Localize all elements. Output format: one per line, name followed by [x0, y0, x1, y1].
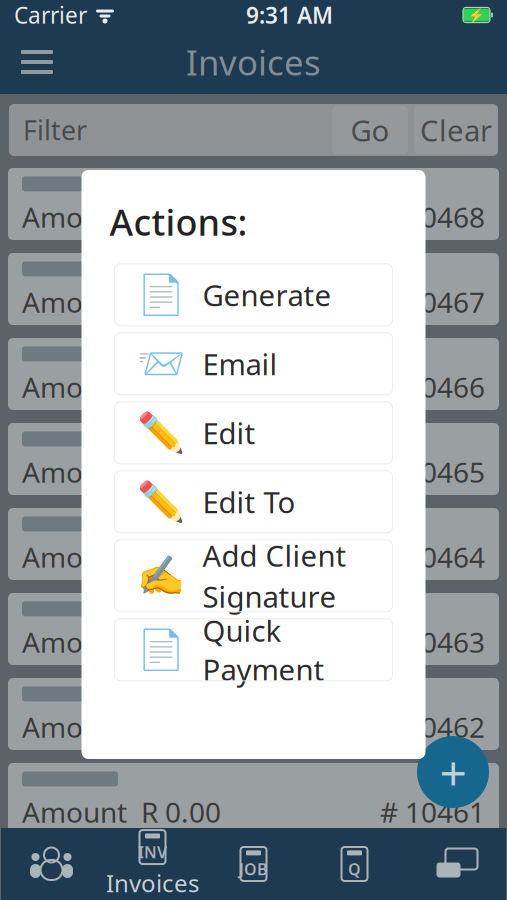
staticText: # 10467	[380, 283, 485, 321]
staticText: Q	[348, 858, 361, 880]
staticText: Amount R 0.00	[22, 623, 221, 661]
staticText: # 10462	[380, 708, 485, 746]
staticText: ⚡	[468, 7, 485, 23]
staticText: INV	[138, 841, 167, 863]
staticText: Carrier	[14, 0, 87, 30]
staticText: ✏️	[136, 480, 184, 524]
staticText: Amount R 0.00	[22, 708, 221, 746]
button[interactable]: Jobs	[203, 828, 304, 900]
button[interactable]: Payments	[405, 828, 506, 900]
button[interactable]: 📄	[114, 264, 392, 326]
staticText: JOB	[239, 858, 268, 880]
staticText: Amount R 0.00	[22, 368, 221, 406]
staticText: Add Client	[202, 536, 346, 575]
staticText: Amount R 0.00	[22, 453, 221, 491]
staticText: Go	[350, 110, 389, 149]
staticText: # 10464	[380, 538, 485, 576]
staticText: Invoices	[186, 39, 321, 85]
staticText: Filter	[23, 112, 87, 148]
button[interactable]: Add invoice	[417, 736, 489, 808]
staticText: # 10465	[380, 453, 485, 491]
staticText: Clear	[420, 110, 492, 149]
button[interactable]: 📨	[114, 333, 392, 395]
staticText: 📨	[136, 342, 184, 386]
staticText: Amount R 0.00	[22, 283, 221, 321]
button[interactable]: 📄	[114, 619, 392, 681]
staticText: ✍️	[136, 554, 184, 598]
staticText: # 10466	[380, 368, 485, 406]
button[interactable]: Quotes	[304, 828, 405, 900]
button[interactable]: Clear	[414, 106, 498, 154]
staticText: # 10468	[380, 198, 485, 236]
button[interactable]: ✏️	[114, 402, 392, 464]
button[interactable]: Menu	[10, 40, 64, 84]
staticText: Amount R 0.00	[22, 538, 221, 576]
staticText: Edit	[202, 413, 255, 452]
staticText: Signature	[202, 577, 336, 616]
button[interactable]: ✍️	[114, 540, 392, 612]
staticText: ✏️	[136, 411, 184, 455]
staticText: Email	[202, 344, 277, 383]
button[interactable]: ✏️	[114, 471, 392, 533]
staticText: Invoices	[106, 867, 199, 899]
staticText: Edit To	[202, 482, 295, 521]
staticText: # 10461	[380, 793, 485, 831]
button[interactable]: Clients	[1, 828, 102, 900]
staticText: Amount R 0.00	[22, 793, 221, 831]
staticText: 📄	[136, 273, 184, 317]
button[interactable]: Go	[332, 106, 408, 154]
staticText: Generate	[202, 275, 331, 314]
staticText: 9:31 AM	[246, 0, 333, 30]
staticText: Actions:	[109, 198, 247, 246]
staticText: Amount R 0.00	[22, 198, 221, 236]
staticText: # 10463	[380, 623, 485, 661]
staticText: +	[439, 740, 466, 804]
button[interactable]: INV	[102, 828, 203, 900]
staticText: 📄	[136, 628, 184, 672]
staticText: Quick Payment	[202, 611, 324, 689]
